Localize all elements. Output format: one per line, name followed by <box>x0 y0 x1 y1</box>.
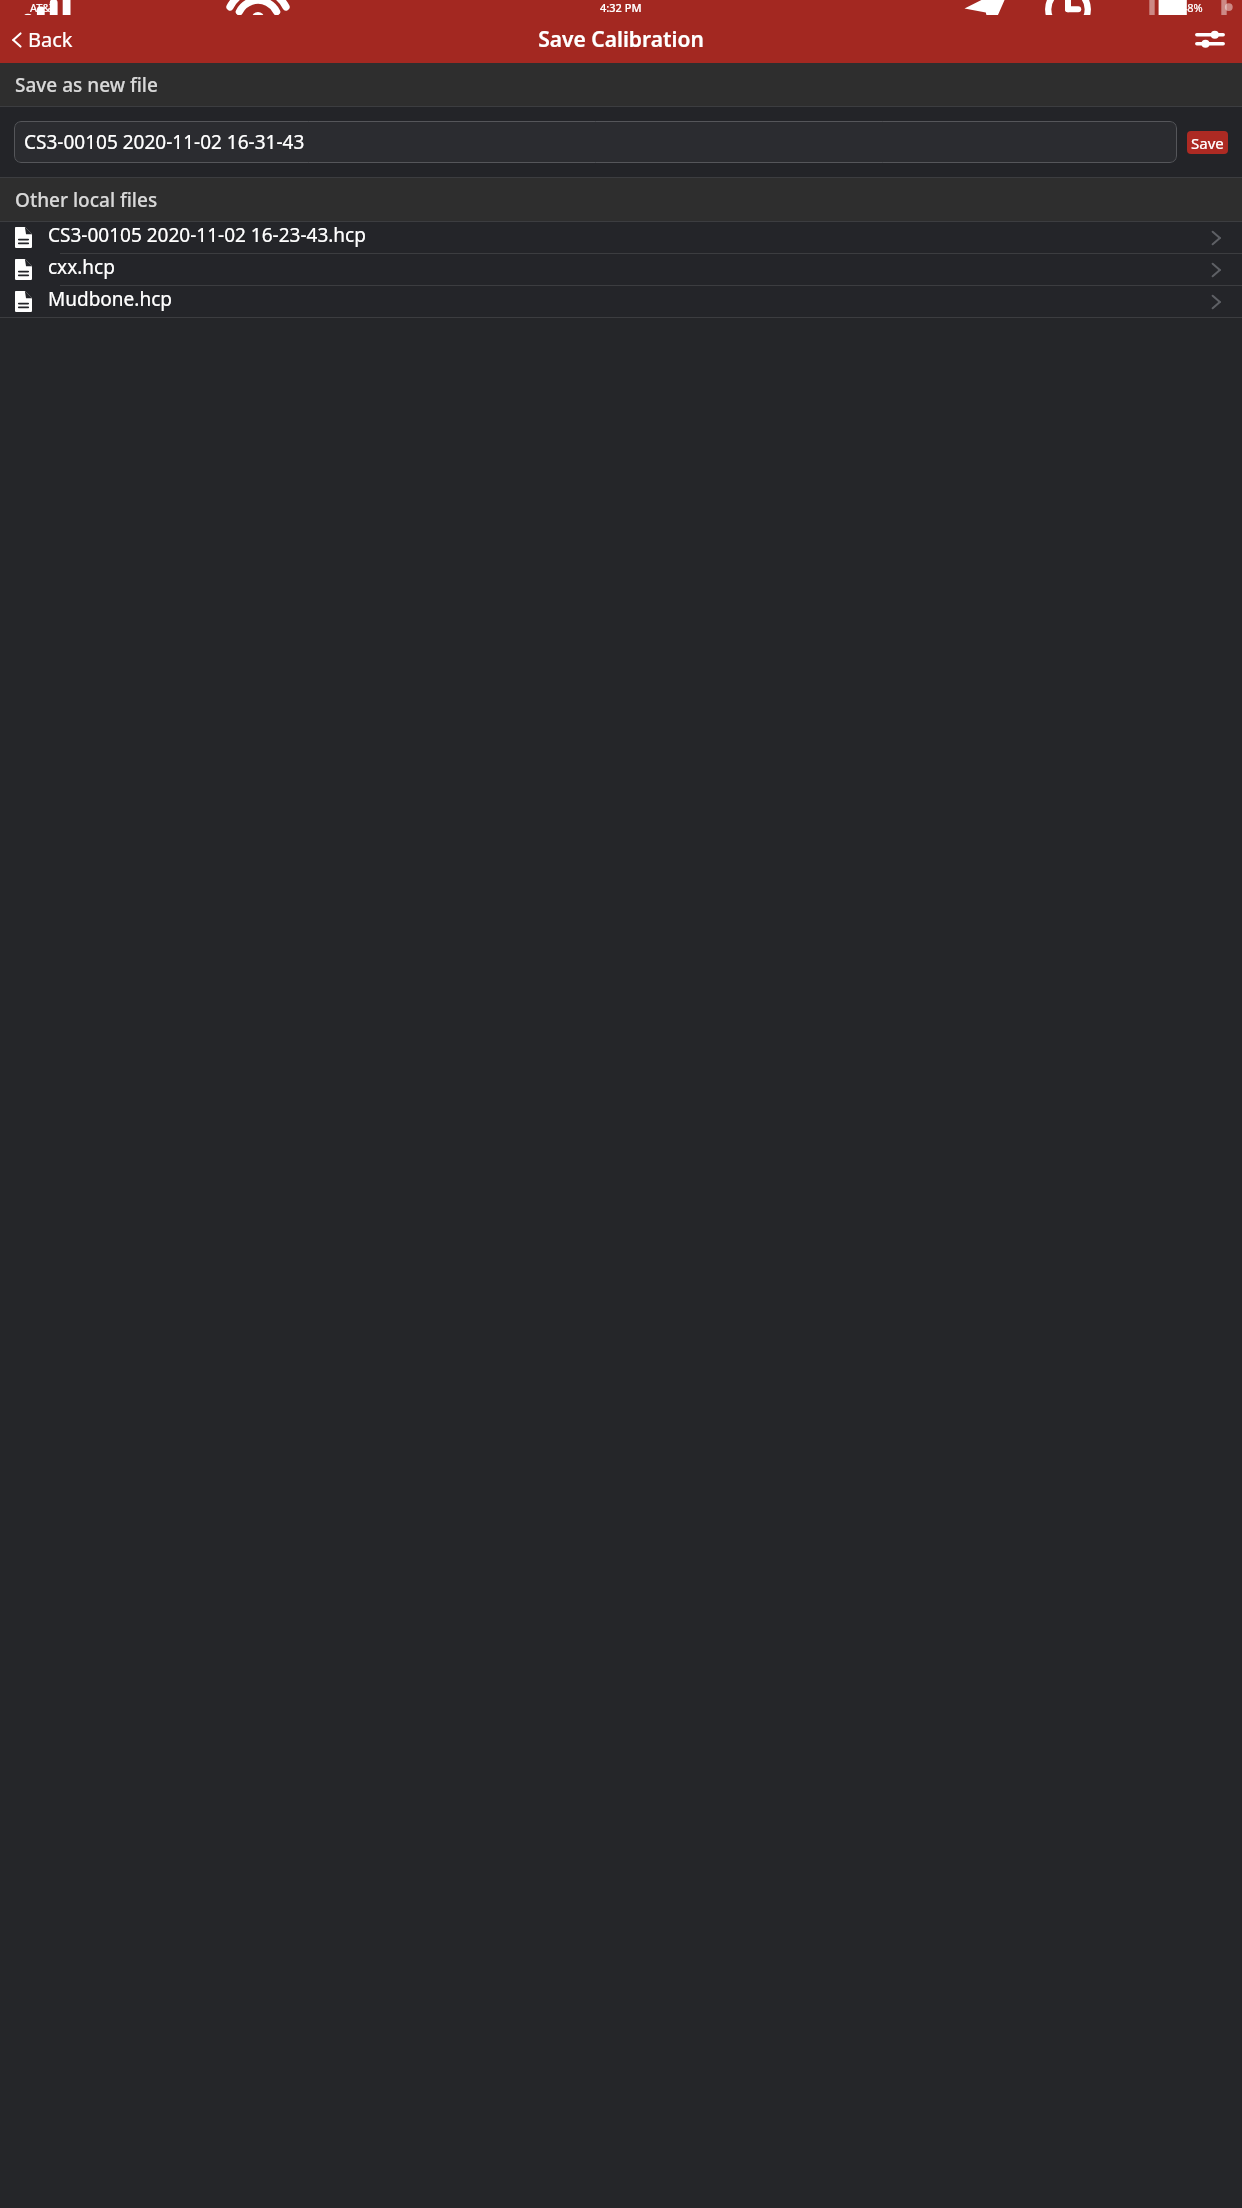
button[interactable]: Settings <box>1188 17 1232 61</box>
staticText: 4:32 PM <box>600 0 642 15</box>
staticText: CS3-00105 2020-11-02 16-23-43.hcp <box>48 222 366 248</box>
staticText: Back <box>28 26 73 53</box>
staticText: Mudbone.hcp <box>48 286 172 312</box>
staticText: cxx.hcp <box>48 254 115 280</box>
button[interactable]: CS3-00105 2020-11-02 16-31-43 <box>14 121 1177 163</box>
staticText: AT&T <box>30 0 56 15</box>
staticText: Save Calibration <box>538 25 704 54</box>
staticText: Other local files <box>15 187 158 213</box>
button[interactable]: Save <box>1187 131 1228 154</box>
button[interactable]: cxx.hcp <box>0 254 1242 285</box>
staticText: 48% <box>1181 0 1203 15</box>
staticText: CS3-00105 2020-11-02 16-31-43 <box>24 129 305 155</box>
staticText: Save as new file <box>15 72 158 98</box>
button[interactable]: Mudbone.hcp <box>0 286 1242 317</box>
staticText: Save <box>1191 133 1224 153</box>
button[interactable]: Back <box>0 22 85 57</box>
button[interactable]: CS3-00105 2020-11-02 16-23-43.hcp <box>0 222 1242 253</box>
